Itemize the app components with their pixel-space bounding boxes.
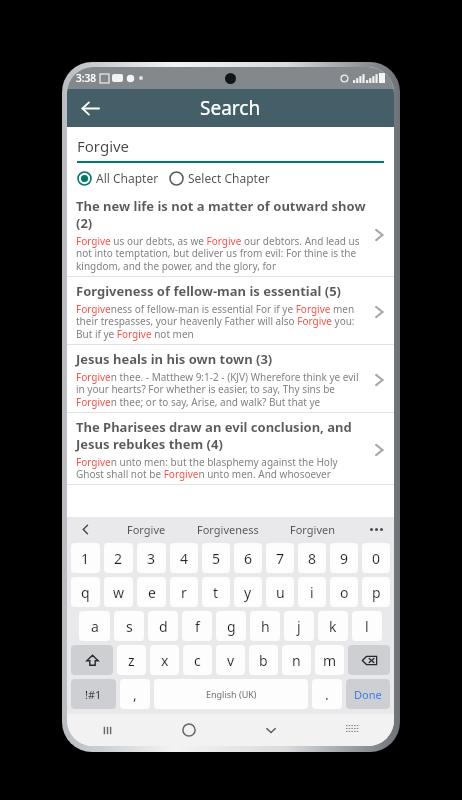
button[interactable]: Keyboard switch	[312, 714, 394, 746]
staticText: Forgive	[77, 136, 130, 156]
staticText: Forgiveness of fellow-man is essential F…	[76, 302, 368, 341]
staticText: f	[195, 617, 200, 636]
staticText: Forgiven thee. - Matthew 9:1-2 - (KJV) W…	[76, 370, 368, 409]
button[interactable]: 3	[137, 543, 166, 573]
button[interactable]: Hide keyboard	[230, 714, 312, 746]
button[interactable]: Backspace	[348, 645, 390, 675]
button[interactable]: q	[71, 577, 100, 607]
staticText: Select Chapter	[188, 170, 270, 186]
button[interactable]: Forgiveness	[197, 522, 259, 537]
button[interactable]: h	[250, 611, 280, 641]
button[interactable]: 6	[234, 543, 262, 573]
button[interactable]: t	[202, 577, 230, 607]
staticText: h	[261, 617, 270, 636]
button[interactable]: .	[312, 679, 342, 709]
button[interactable]: All Chapter	[77, 170, 159, 186]
staticText: 5	[212, 549, 221, 568]
staticText: English (UK)	[206, 688, 257, 700]
button[interactable]: s	[114, 611, 144, 641]
button[interactable]: k	[318, 611, 348, 641]
staticText: 4	[180, 549, 189, 568]
button[interactable]: r	[170, 577, 198, 607]
button[interactable]: u	[266, 577, 294, 607]
button[interactable]: !#1	[71, 679, 116, 709]
button[interactable]: Select Chapter	[169, 170, 270, 186]
staticText: k	[329, 617, 337, 636]
staticText: l	[365, 617, 369, 636]
staticText: 7	[276, 549, 285, 568]
button[interactable]: Previous	[75, 519, 95, 539]
button[interactable]: x	[150, 645, 179, 675]
button[interactable]: n	[282, 645, 311, 675]
button[interactable]: g	[216, 611, 246, 641]
button[interactable]: More	[366, 519, 386, 539]
staticText: !#1	[85, 687, 102, 702]
staticText: n	[292, 651, 301, 670]
button[interactable]: w	[104, 577, 133, 607]
button[interactable]: Forgiveness of fellow-man is essential (…	[67, 277, 394, 344]
button[interactable]: Recents	[67, 714, 148, 746]
button[interactable]: m	[315, 645, 344, 675]
button[interactable]: z	[117, 645, 146, 675]
staticText: Forgiven unto men: but the blasphemy aga…	[76, 455, 368, 481]
staticText: g	[227, 617, 236, 636]
button[interactable]: b	[249, 645, 278, 675]
button[interactable]: 0	[362, 543, 390, 573]
staticText: r	[181, 583, 187, 602]
button[interactable]: f	[182, 611, 212, 641]
staticText: a	[91, 617, 99, 636]
button[interactable]: y	[234, 577, 262, 607]
staticText: 3:38	[76, 71, 96, 85]
button[interactable]: Home	[148, 714, 230, 746]
button[interactable]: Done	[346, 679, 390, 709]
button[interactable]: o	[330, 577, 358, 607]
button[interactable]: ,	[120, 679, 150, 709]
staticText: ,	[133, 685, 137, 704]
staticText: s	[126, 617, 133, 636]
button[interactable]: d	[148, 611, 178, 641]
staticText: i	[310, 583, 314, 602]
button[interactable]: Back	[73, 91, 107, 125]
button[interactable]: 2	[104, 543, 133, 573]
staticText: The new life is not a matter of outward …	[76, 197, 368, 232]
staticText: 6	[244, 549, 253, 568]
button[interactable]: c	[183, 645, 212, 675]
staticText: Done	[354, 687, 382, 702]
button[interactable]: 4	[170, 543, 198, 573]
staticText: o	[340, 583, 349, 602]
staticText: c	[194, 651, 201, 670]
button[interactable]: j	[284, 611, 314, 641]
button[interactable]: 5	[202, 543, 230, 573]
button[interactable]: 1	[71, 543, 100, 573]
staticText: w	[113, 583, 125, 602]
button[interactable]: a	[79, 611, 110, 641]
staticText: q	[81, 583, 90, 602]
staticText: x	[161, 651, 169, 670]
button[interactable]: The Pharisees draw an evil conclusion, a…	[67, 413, 394, 484]
button[interactable]: 8	[298, 543, 326, 573]
staticText: 9	[340, 549, 349, 568]
button[interactable]: Shift	[71, 645, 113, 675]
staticText: z	[128, 651, 135, 670]
staticText: Forgiveness of fellow-man is essential (…	[76, 282, 342, 300]
button[interactable]: Forgive	[77, 136, 384, 156]
button[interactable]: Forgiven	[290, 522, 335, 537]
button[interactable]: English (UK)	[154, 679, 308, 709]
staticText: u	[276, 583, 285, 602]
button[interactable]: i	[298, 577, 326, 607]
button[interactable]: v	[216, 645, 245, 675]
staticText: Forgive us our debts, as we Forgive our …	[76, 234, 368, 273]
staticText: Search	[200, 95, 261, 121]
button[interactable]: 7	[266, 543, 294, 573]
button[interactable]: The new life is not a matter of outward …	[67, 192, 394, 276]
button[interactable]: e	[137, 577, 166, 607]
button[interactable]: Jesus heals in his own town (3)	[67, 345, 394, 412]
staticText: e	[148, 583, 156, 602]
button[interactable]: l	[352, 611, 382, 641]
button[interactable]: 9	[330, 543, 358, 573]
button[interactable]: Forgive	[127, 522, 166, 537]
button[interactable]: p	[362, 577, 390, 607]
staticText: b	[259, 651, 268, 670]
staticText: m	[323, 651, 337, 670]
staticText: Jesus heals in his own town (3)	[76, 350, 273, 368]
